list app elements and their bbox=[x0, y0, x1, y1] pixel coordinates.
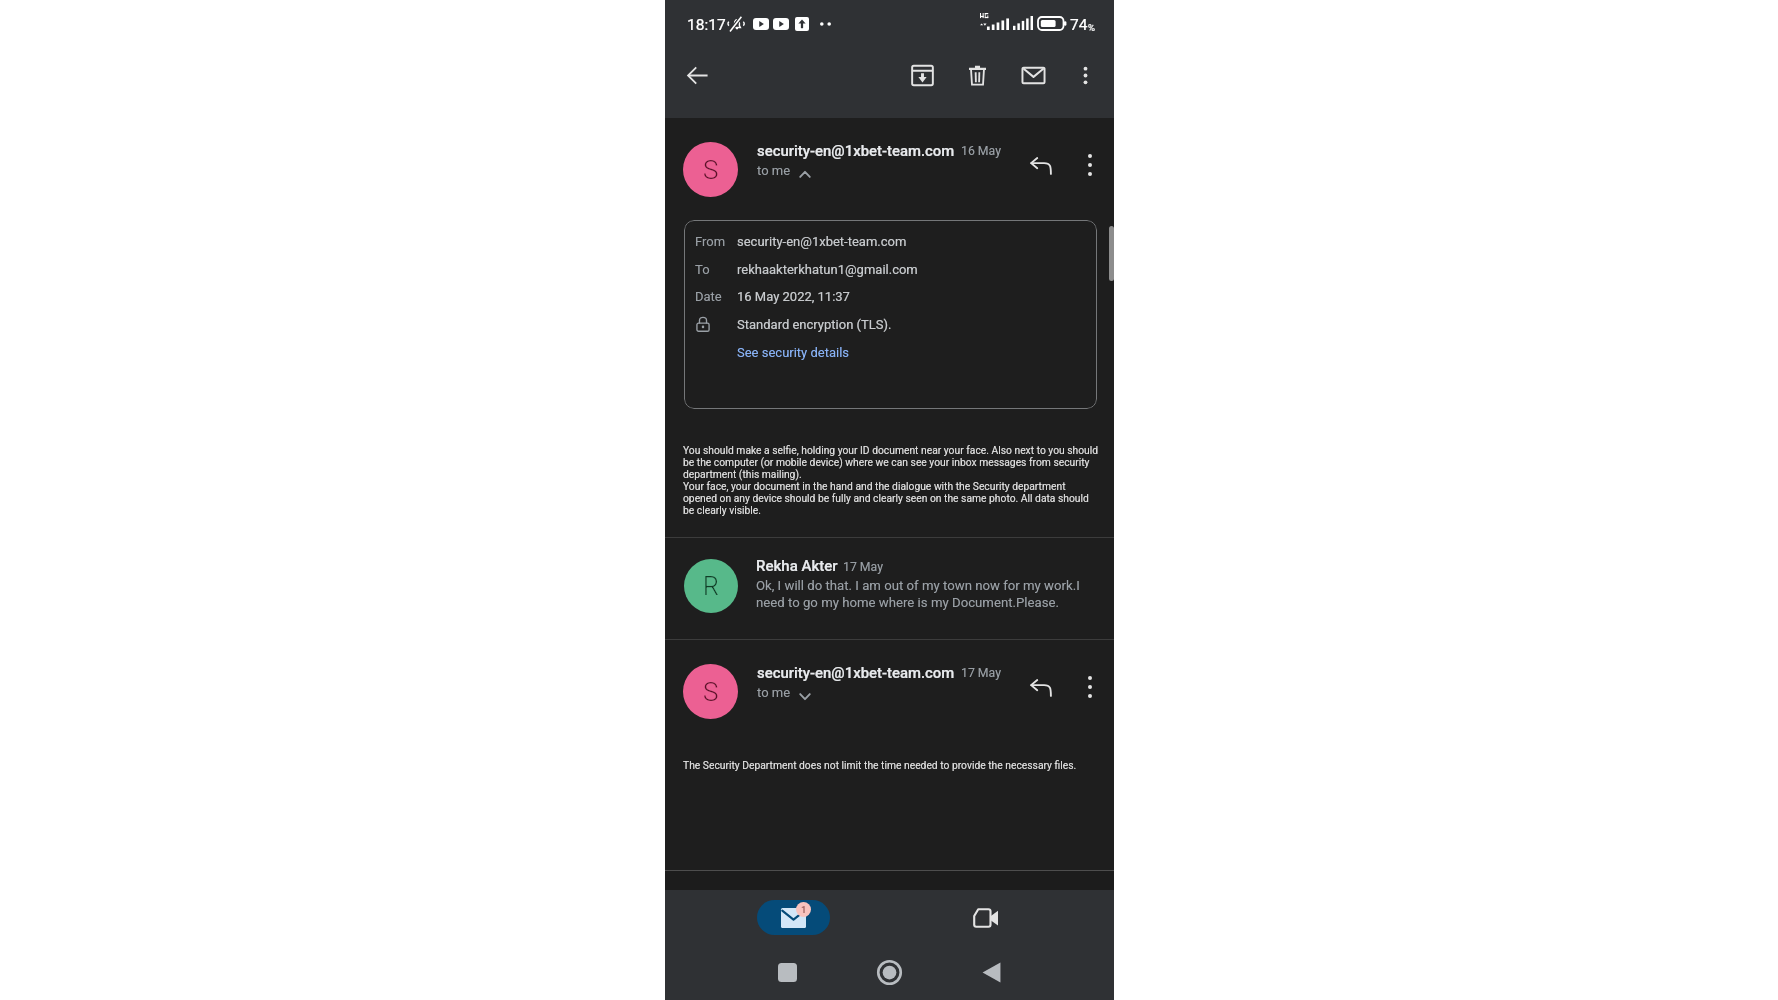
staticText: Your face, your document in the hand and… bbox=[683, 480, 1101, 516]
staticText: See security details bbox=[737, 345, 850, 360]
button[interactable]: Recent apps bbox=[765, 950, 810, 995]
staticText: Standard encryption (TLS). bbox=[737, 317, 892, 332]
button[interactable]: R bbox=[665, 538, 1114, 639]
staticText: S bbox=[703, 155, 719, 185]
staticText: R bbox=[703, 572, 719, 601]
staticText: 17 May bbox=[961, 666, 1002, 680]
staticText: 74 bbox=[1070, 16, 1088, 34]
button[interactable]: Back bbox=[675, 53, 719, 97]
button[interactable]: Reply bbox=[1019, 666, 1063, 710]
staticText: security-en@1xbet-team.com bbox=[757, 664, 955, 681]
staticText: S bbox=[703, 677, 719, 707]
button[interactable]: From bbox=[684, 220, 1097, 409]
staticText: 16 May bbox=[961, 144, 1002, 158]
button[interactable]: More options bbox=[1063, 53, 1107, 97]
button[interactable]: S bbox=[665, 640, 1114, 738]
staticText: 17 May bbox=[843, 560, 884, 574]
staticText: 1 bbox=[801, 904, 807, 915]
button[interactable]: Start a video meeting bbox=[963, 896, 1007, 940]
staticText: to me bbox=[757, 163, 791, 178]
staticText: 16 May 2022, 11:37 bbox=[737, 289, 850, 304]
button[interactable]: See security details bbox=[737, 345, 850, 360]
staticText: Rekha Akter bbox=[756, 557, 838, 575]
button[interactable]: Back bbox=[969, 950, 1014, 995]
staticText: security-en@1xbet-team.com bbox=[737, 234, 907, 249]
button[interactable]: Home bbox=[867, 950, 912, 995]
staticText: To bbox=[695, 262, 710, 277]
button[interactable]: S bbox=[665, 118, 1114, 216]
staticText: security-en@1xbet-team.com bbox=[757, 142, 955, 159]
staticText: From bbox=[695, 234, 726, 249]
button[interactable]: Archive bbox=[900, 53, 944, 97]
staticText: You should make a selfie, holding your I… bbox=[683, 444, 1101, 480]
staticText: rekhaakterkhatun1@gmail.com bbox=[737, 262, 918, 277]
staticText: Ok, I will do that. I am out of my town … bbox=[756, 578, 1101, 610]
staticText: The Security Department does not limit t… bbox=[683, 759, 1077, 771]
staticText: Date bbox=[695, 289, 722, 304]
staticText: 18:17 bbox=[687, 16, 726, 34]
staticText: to me bbox=[757, 685, 791, 700]
button[interactable]: More options bbox=[1068, 143, 1112, 187]
button[interactable]: Mail bbox=[757, 900, 830, 935]
button[interactable]: Delete bbox=[955, 53, 999, 97]
button[interactable]: Reply bbox=[1019, 144, 1063, 188]
button[interactable]: More options bbox=[1068, 665, 1112, 709]
staticText: % bbox=[1088, 22, 1095, 33]
button[interactable]: Mark as unread bbox=[1011, 53, 1055, 97]
